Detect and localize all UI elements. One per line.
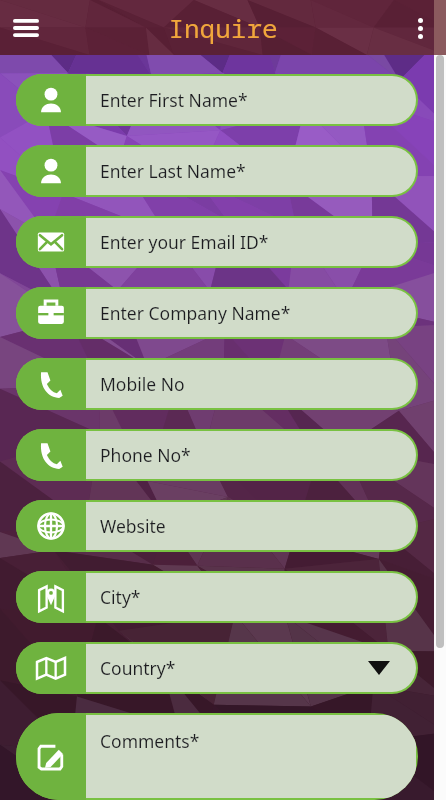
button[interactable]: More options [400,8,440,48]
staticText: Phone No* [100,443,191,467]
staticText: Website [100,514,166,538]
staticText: Mobile No [100,372,185,396]
button[interactable]: Phone No* [16,429,418,481]
staticText: Enter Company Name* [100,301,291,325]
staticText: Country* [100,656,176,680]
button[interactable]: Enter your Email ID* [16,216,418,268]
button[interactable]: Open navigation menu [4,6,48,50]
staticText: Enter First Name* [100,88,248,112]
staticText: Comments* [100,729,200,753]
button[interactable]: Enter Last Name* [16,145,418,197]
button[interactable]: Mobile No [16,358,418,410]
staticText: Inquire [168,10,278,45]
staticText: City* [100,585,141,609]
button[interactable]: Website [16,500,418,552]
button[interactable]: City* [16,571,418,623]
button[interactable]: Enter First Name* [16,74,418,126]
staticText: Enter Last Name* [100,159,246,183]
button[interactable]: Comments* [16,713,418,800]
staticText: Enter your Email ID* [100,230,269,254]
button[interactable]: Enter Company Name* [16,287,418,339]
button[interactable]: Country* [16,642,418,694]
